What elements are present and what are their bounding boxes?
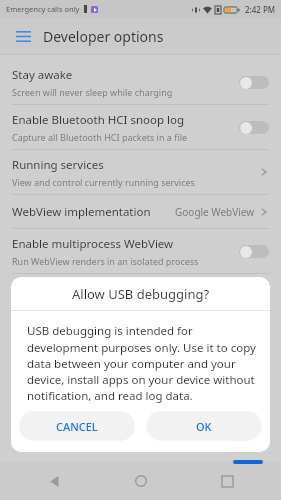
staticText: Allow USB debugging? [72,285,210,303]
button[interactable]: Enable multiprocess WebView [0,229,281,273]
button[interactable]: Toggle setting [239,75,269,90]
staticText: Developer options [43,27,164,46]
staticText: 2:42 PM [245,4,276,15]
button[interactable]: Toggle setting [239,120,269,135]
button[interactable]: Open navigation menu [8,21,38,51]
staticText: View and control currently running servi… [12,176,195,188]
staticText: Running services [12,157,104,173]
staticText: OK [196,419,212,434]
staticText: Google WebView [175,205,255,219]
staticText: USB debugging is intended for developmen… [27,323,256,403]
staticText: Emergency calls only [6,4,80,14]
staticText: WebView implementation [12,204,175,220]
staticText: Stay awake [12,67,73,83]
staticText: Screen will never sleep while charging [12,86,173,98]
button[interactable]: Recent apps [213,467,241,495]
button[interactable]: Back [40,467,68,495]
button[interactable]: Home [127,467,155,495]
staticText: Enable multiprocess WebView [12,236,174,252]
staticText: CANCEL [56,419,98,434]
button[interactable]: Enable Bluetooth HCI snoop log [0,105,281,149]
staticText: Enable Bluetooth HCI snoop log [12,112,185,128]
button[interactable]: Running services [0,150,281,194]
button[interactable]: Toggle setting [239,244,269,259]
staticText: Capture all Bluetooth HCI packets in a f… [12,131,188,143]
staticText: Run WebView renders in an isolated proce… [12,255,199,267]
button[interactable]: CANCEL [19,411,135,441]
button[interactable]: Stay awake [0,60,281,104]
button[interactable]: OK [146,411,262,441]
button[interactable]: WebView implementation [0,195,281,228]
